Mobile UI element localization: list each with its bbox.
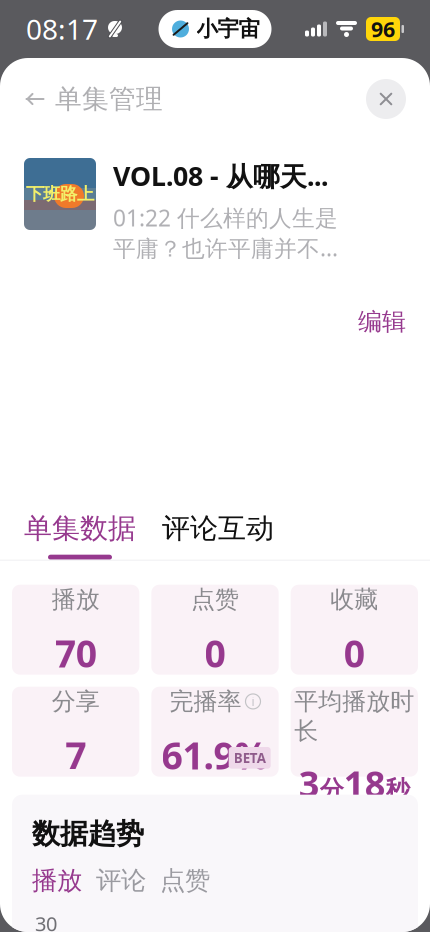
staticText: 收藏	[330, 585, 378, 614]
button[interactable]: 收藏	[291, 585, 418, 675]
button[interactable]: 关闭	[366, 79, 406, 119]
staticText: 点赞	[160, 865, 210, 896]
staticText: 播放	[32, 865, 82, 896]
staticText: VOL.08 - 从哪天开始，你接受了自己…	[113, 158, 341, 194]
staticText: 0	[204, 628, 225, 678]
staticText: 分	[320, 775, 344, 804]
staticText: 单集数据	[24, 511, 136, 546]
staticText: 完播率	[169, 687, 241, 716]
button[interactable]: 单集管理	[24, 75, 171, 123]
button[interactable]: 完播率	[151, 687, 279, 777]
button[interactable]: 平均播放时长	[291, 687, 418, 777]
button[interactable]: 分享	[12, 687, 139, 777]
staticText: 30	[35, 910, 57, 932]
staticText: BETA	[234, 749, 266, 767]
staticText: 18	[344, 760, 386, 807]
staticText: 秒	[386, 775, 410, 804]
staticText: 小宇宙	[196, 16, 259, 42]
button[interactable]: 播放	[32, 865, 82, 896]
staticText: 下班路上	[26, 183, 94, 205]
staticText: 播放	[52, 585, 100, 614]
staticText: 评论	[96, 865, 146, 896]
staticText: 7	[65, 730, 86, 780]
staticText: 编辑	[358, 307, 406, 336]
button[interactable]: 播放	[12, 585, 139, 675]
staticText: 70	[55, 628, 97, 678]
staticText: 平均播放时长	[294, 687, 414, 746]
button[interactable]: 评论互动	[162, 511, 274, 560]
staticText: i	[251, 693, 254, 709]
button[interactable]: 评论	[96, 865, 146, 896]
button[interactable]: 下班路上	[0, 140, 430, 511]
button[interactable]: 单集数据	[24, 511, 136, 560]
staticText: 33	[299, 760, 320, 855]
button[interactable]: 点赞	[160, 865, 210, 896]
staticText: 评论互动	[162, 511, 274, 546]
staticText: 01:22 什么样的人生是平庸？也许平庸并不是什么坏事 05:49 我们和不平庸…	[113, 203, 341, 263]
staticText: 单集管理	[55, 83, 163, 115]
button[interactable]: 点赞	[151, 585, 279, 675]
staticText: 08:17	[26, 10, 98, 48]
staticText: 0	[344, 628, 365, 678]
staticText: 61.9%	[161, 730, 268, 780]
staticText: 点赞	[191, 585, 239, 614]
staticText: 96	[371, 15, 395, 43]
staticText: 数据趋势	[32, 817, 144, 851]
staticText: 分享	[52, 687, 100, 716]
